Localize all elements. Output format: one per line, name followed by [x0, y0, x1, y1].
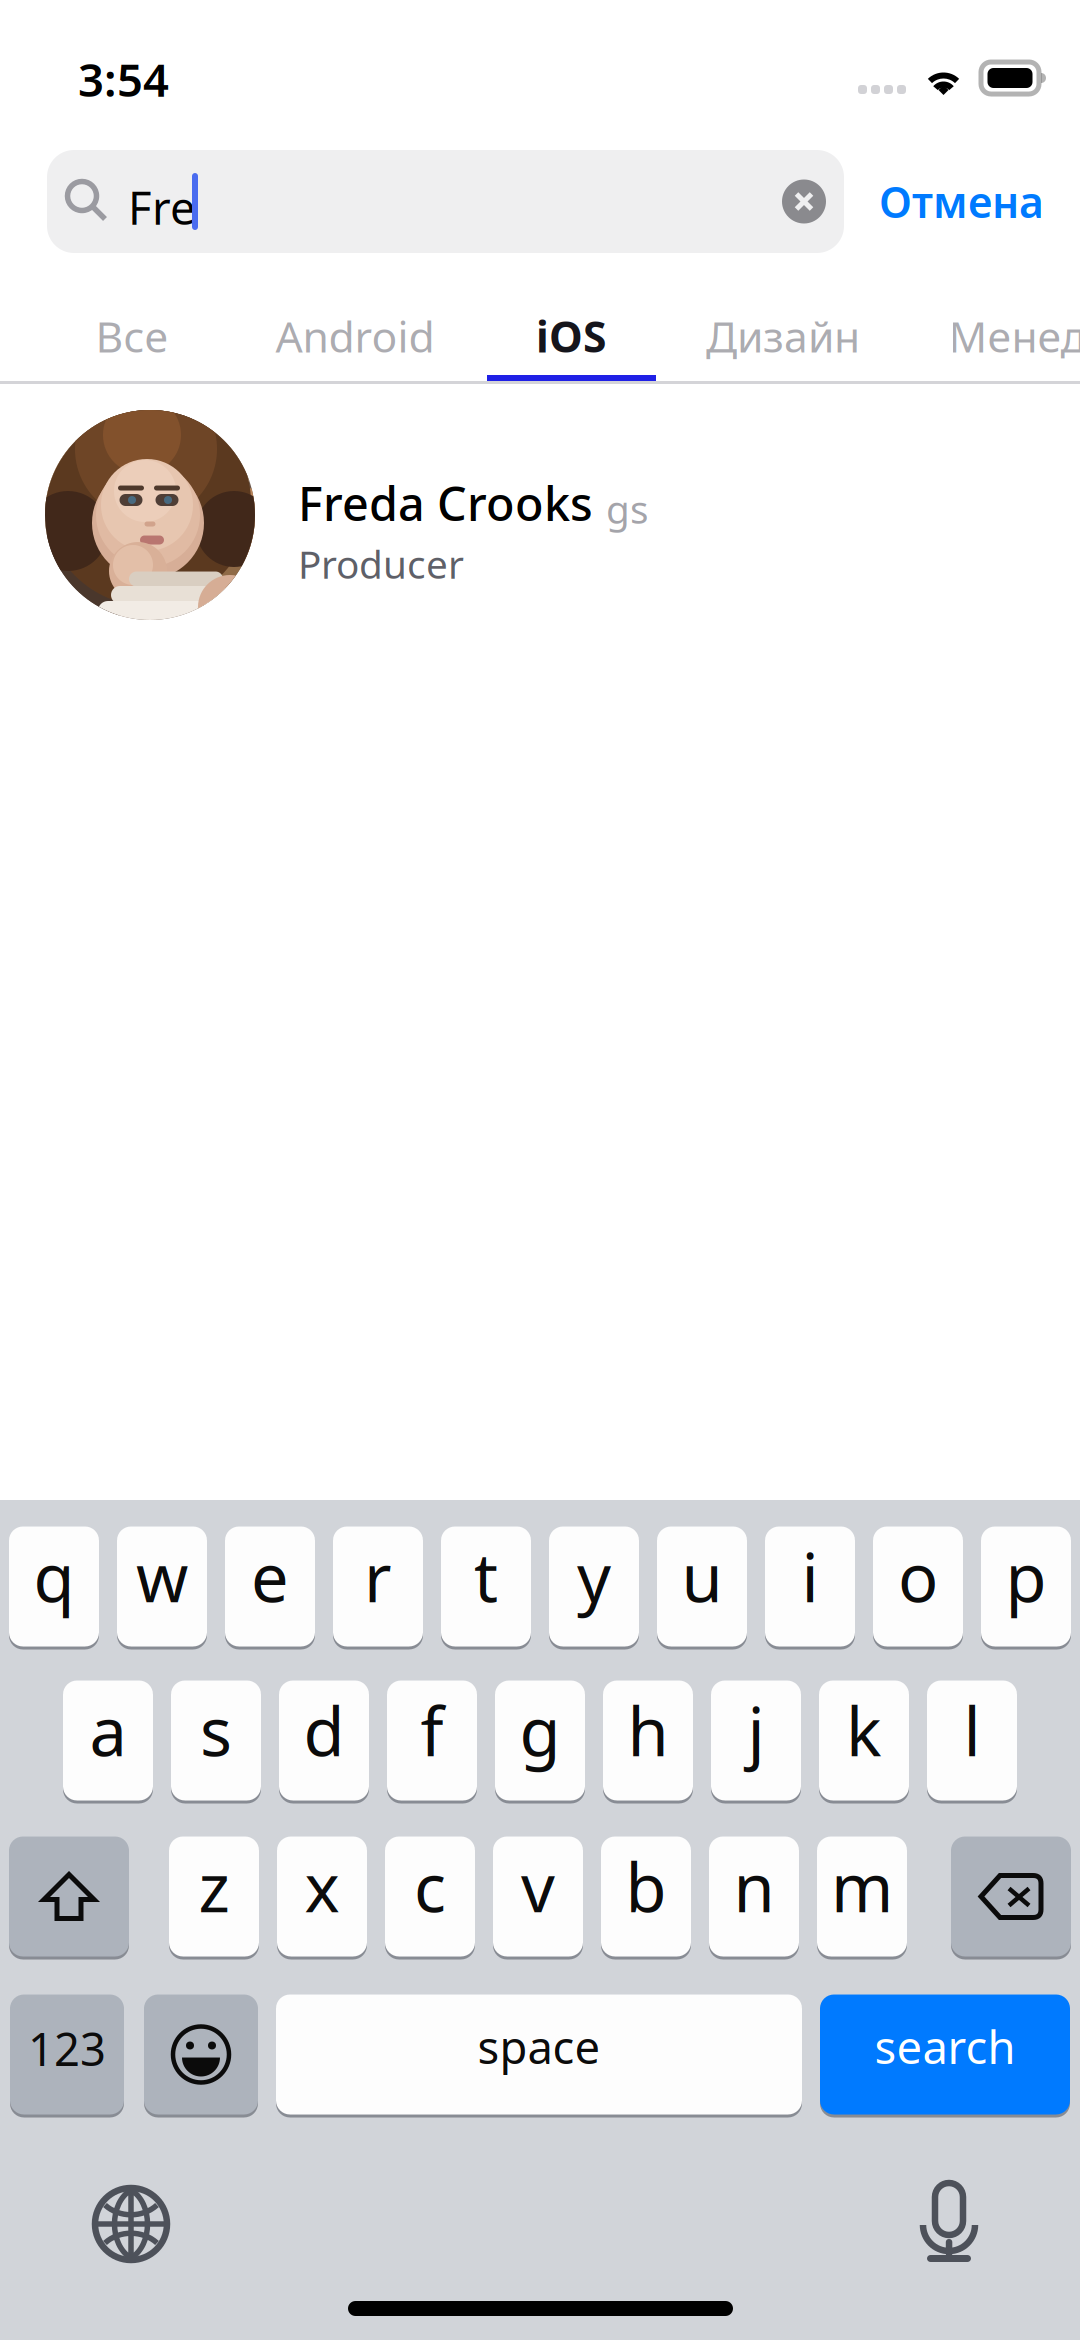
button[interactable]: v	[493, 1835, 583, 1958]
staticText: n	[733, 1842, 774, 1931]
staticText: j	[747, 1686, 764, 1775]
staticText: m	[831, 1842, 893, 1931]
button[interactable]: g	[495, 1679, 585, 1802]
button[interactable]: x	[277, 1835, 367, 1958]
button[interactable]: Все	[47, 290, 217, 382]
button[interactable]: m	[817, 1835, 907, 1958]
button[interactable]: Android	[270, 290, 440, 382]
button[interactable]: s	[171, 1679, 261, 1802]
button[interactable]: l	[927, 1679, 1017, 1802]
button[interactable]: u	[657, 1525, 747, 1648]
staticText: d	[303, 1686, 344, 1775]
button[interactable]: space	[276, 1993, 802, 2116]
staticText: s	[200, 1686, 232, 1775]
button[interactable]: w	[117, 1525, 207, 1648]
button[interactable]: j	[711, 1679, 801, 1802]
staticText: space	[477, 2016, 600, 2077]
staticText: 3:54	[78, 49, 169, 109]
button[interactable]: Менеджмент	[1000, 290, 1080, 382]
staticText: 123	[28, 2018, 106, 2079]
staticText: t	[474, 1532, 498, 1621]
staticText: y	[577, 1532, 611, 1621]
staticText: e	[251, 1532, 289, 1621]
button[interactable]: z	[169, 1835, 259, 1958]
staticText: l	[963, 1686, 980, 1775]
staticText: z	[198, 1842, 229, 1931]
staticText: g	[519, 1686, 560, 1775]
button[interactable]: b	[601, 1835, 691, 1958]
button[interactable]: p	[981, 1525, 1071, 1648]
staticText: Fre	[128, 177, 196, 237]
button[interactable]: t	[441, 1525, 531, 1648]
staticText: Все	[95, 308, 168, 364]
staticText: o	[898, 1532, 938, 1621]
staticText: r	[364, 1532, 392, 1621]
button[interactable]: e	[225, 1525, 315, 1648]
button[interactable]: r	[333, 1525, 423, 1648]
button[interactable]: o	[873, 1525, 963, 1648]
button[interactable]: i	[765, 1525, 855, 1648]
button[interactable]: search	[820, 1993, 1070, 2116]
staticText: Отмена	[879, 173, 1044, 230]
staticText: iOS	[536, 308, 607, 364]
staticText: u	[681, 1532, 722, 1621]
staticText: a	[89, 1686, 126, 1775]
staticText: f	[420, 1686, 443, 1775]
staticText: Android	[275, 308, 434, 364]
button[interactable]: Delete	[951, 1835, 1071, 1958]
button[interactable]: Дизайн	[698, 290, 868, 382]
button[interactable]: iOS	[487, 290, 656, 382]
staticText: b	[625, 1842, 666, 1931]
button[interactable]: h	[603, 1679, 693, 1802]
staticText: Producer	[298, 538, 464, 589]
button[interactable]: Emoji	[144, 1993, 258, 2116]
staticText: c	[414, 1842, 446, 1931]
button[interactable]: q	[9, 1525, 99, 1648]
staticText: i	[801, 1532, 818, 1621]
staticText: x	[304, 1842, 339, 1931]
button[interactable]: Отмена	[879, 150, 1059, 253]
button[interactable]: n	[709, 1835, 799, 1958]
staticText: k	[846, 1686, 882, 1775]
button[interactable]: y	[549, 1525, 639, 1648]
button[interactable]: f	[387, 1679, 477, 1802]
staticText: Дизайн	[706, 308, 860, 364]
button[interactable]: Shift	[9, 1835, 129, 1958]
button[interactable]: k	[819, 1679, 909, 1802]
staticText: Freda Crooks	[298, 472, 593, 534]
staticText: q	[33, 1532, 74, 1621]
staticText: h	[627, 1686, 668, 1775]
button[interactable]: Dictation	[920, 2183, 978, 2265]
staticText: v	[521, 1842, 555, 1931]
button[interactable]: a	[63, 1679, 153, 1802]
button[interactable]: Clear text	[764, 150, 844, 253]
button[interactable]: Freda Crooks	[0, 390, 1080, 640]
button[interactable]: d	[279, 1679, 369, 1802]
staticText: Менеджмент	[948, 308, 1080, 364]
staticText: gs	[606, 483, 649, 534]
staticText: p	[1005, 1532, 1046, 1621]
button[interactable]: 123	[10, 1993, 124, 2116]
staticText: search	[874, 2016, 1015, 2077]
button[interactable]: Next keyboard	[95, 2188, 167, 2260]
button[interactable]: c	[385, 1835, 475, 1958]
staticText: w	[136, 1532, 188, 1621]
